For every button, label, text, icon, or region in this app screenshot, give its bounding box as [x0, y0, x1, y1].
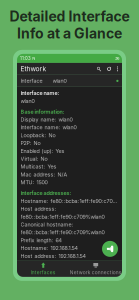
- button[interactable]: Search: [96, 66, 101, 71]
- staticText: Canonical hostname:: [20, 221, 73, 228]
- staticText: Mac address: N/A: [20, 171, 67, 178]
- staticText: Interface name:: [20, 90, 59, 96]
- button[interactable]: Refresh: [106, 66, 111, 71]
- button[interactable]: Interfaces: [17, 262, 69, 275]
- button[interactable]: Network connections: [69, 262, 122, 275]
- staticText: Prefix length: 64: [20, 237, 61, 243]
- staticText: Base information:: [20, 108, 64, 115]
- staticText: fe80::bcba:1eff:fe90:c709%wlan0: [20, 229, 104, 236]
- staticText: 36: [115, 56, 119, 61]
- staticText: Network connections: [70, 270, 122, 275]
- button[interactable]: Share: [102, 241, 118, 257]
- staticText: Canonical hostname: 192.168.1.54: [20, 261, 102, 267]
- staticText: Interface name: wlan0: [20, 124, 76, 131]
- staticText: Detailed Interface: [9, 8, 129, 25]
- staticText: MTU: 1500: [20, 179, 47, 186]
- staticText: wlan0: [20, 98, 34, 104]
- staticText: Host address: 192.168.1.54: [20, 253, 85, 259]
- staticText: Display name: wlan0: [20, 116, 72, 123]
- staticText: Interfaces: [31, 270, 56, 275]
- staticText: N: [32, 56, 35, 61]
- staticText: Virtual: No: [20, 156, 47, 162]
- staticText: Multicast: Yes: [20, 163, 56, 170]
- staticText: Loopback: No: [20, 132, 55, 138]
- button[interactable]: Interface: [17, 75, 122, 87]
- staticText: fe80::bcba:1eff:fe90:c709%wlan0: [20, 213, 104, 220]
- staticText: Ethwork: [20, 65, 46, 73]
- staticText: Interface: [20, 78, 42, 84]
- staticText: Interface addresses:: [20, 190, 71, 196]
- staticText: Hostname: fe80::bcba:1eff:fe90:c709%wlan…: [20, 198, 118, 204]
- staticText: P2P: No: [20, 140, 40, 146]
- staticText: Info at a Glance: [17, 25, 122, 42]
- staticText: wlan0: [52, 78, 66, 84]
- staticText: Enabled (up): Yes: [20, 148, 64, 154]
- staticText: Host address:: [20, 206, 56, 212]
- staticText: Broadcast:: [20, 268, 47, 275]
- staticText: Hostname: 192.168.1.255: [20, 276, 81, 283]
- staticText: Hostname: 192.168.1.54: [20, 245, 77, 251]
- button[interactable]: More options: [116, 66, 118, 71]
- staticText: 11:03: [20, 56, 31, 61]
